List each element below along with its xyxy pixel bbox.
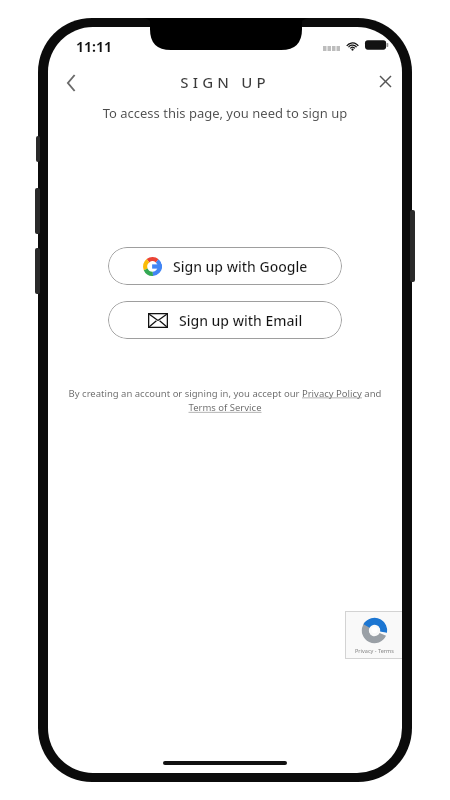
staticText: Privacy - Terms [355, 647, 394, 654]
staticText: Sign up with Google [173, 257, 308, 276]
staticText: Sign up with Email [179, 311, 303, 330]
staticText: 11:11 [76, 37, 112, 56]
button[interactable]: Close [367, 63, 402, 99]
staticText: By creating an account or signing in, yo… [62, 387, 388, 414]
staticText: SIGN UP [48, 72, 402, 92]
staticText: To access this page, you need to sign up [48, 104, 402, 122]
button[interactable]: Sign up with Google [108, 247, 342, 285]
button[interactable]: Sign up with Email [108, 301, 342, 339]
button[interactable]: Back [52, 63, 92, 103]
button[interactable]: reCAPTCHA privacy and terms [345, 611, 402, 659]
